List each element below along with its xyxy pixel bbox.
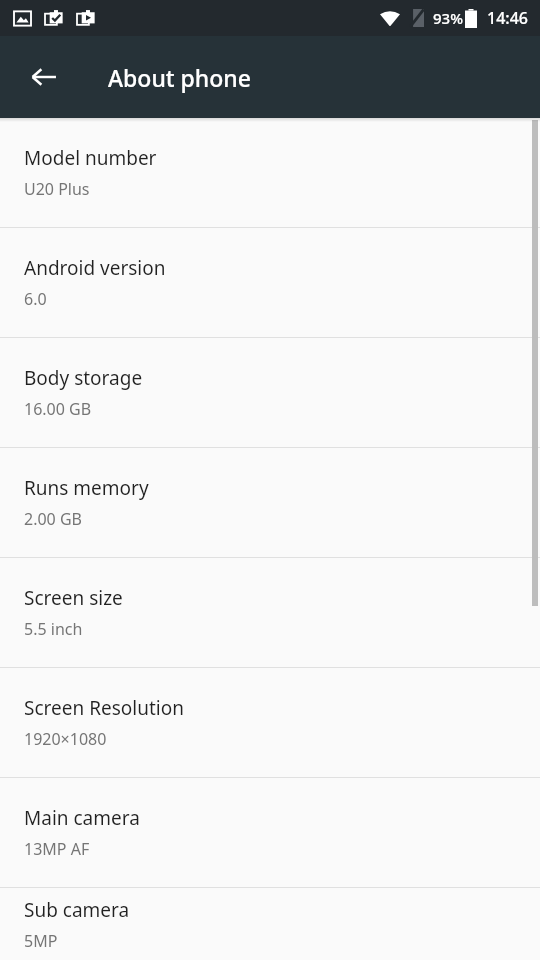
staticText: Screen size bbox=[24, 585, 123, 611]
staticText: 13MP AF bbox=[24, 838, 90, 860]
button[interactable]: Main camera bbox=[0, 778, 540, 887]
staticText: Main camera bbox=[24, 805, 140, 831]
button[interactable]: Body storage bbox=[0, 338, 540, 447]
staticText: 1920×1080 bbox=[24, 728, 107, 750]
staticText: About phone bbox=[108, 62, 251, 93]
button[interactable]: Model number bbox=[0, 118, 540, 227]
staticText: 5.5 inch bbox=[24, 618, 83, 640]
staticText: 5MP bbox=[24, 930, 58, 952]
button[interactable]: Screen size bbox=[0, 558, 540, 667]
staticText: Body storage bbox=[24, 365, 143, 391]
staticText: 16.00 GB bbox=[24, 398, 92, 420]
staticText: U20 Plus bbox=[24, 178, 90, 200]
staticText: Android version bbox=[24, 255, 166, 281]
button[interactable]: Runs memory bbox=[0, 448, 540, 557]
button[interactable]: Back bbox=[20, 53, 68, 101]
button[interactable]: Screen Resolution bbox=[0, 668, 540, 777]
staticText: Sub camera bbox=[24, 897, 130, 923]
button[interactable]: Android version bbox=[0, 228, 540, 337]
staticText: 14:46 bbox=[487, 7, 528, 29]
staticText: Runs memory bbox=[24, 475, 149, 501]
staticText: 93% bbox=[433, 8, 463, 28]
staticText: Model number bbox=[24, 145, 157, 171]
staticText: 6.0 bbox=[24, 288, 47, 310]
staticText: 2.00 GB bbox=[24, 508, 82, 530]
button[interactable]: Sub camera bbox=[0, 888, 540, 960]
staticText: Screen Resolution bbox=[24, 695, 184, 721]
